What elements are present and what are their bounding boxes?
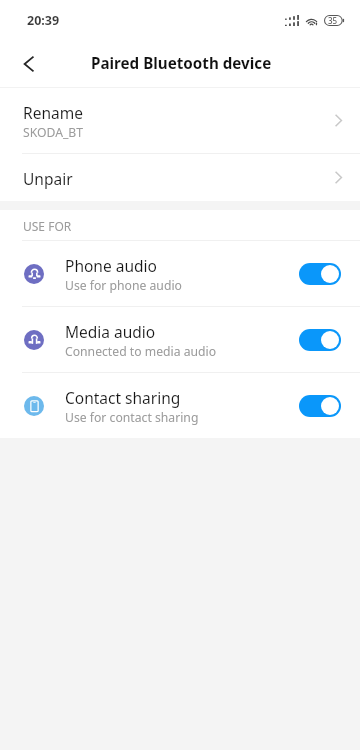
staticText: Connected to media audio — [65, 343, 217, 360]
staticText: 20:39 — [27, 12, 60, 29]
button[interactable]: Contact sharing — [0, 373, 360, 438]
staticText: Unpair — [23, 168, 73, 189]
staticText: USE FOR — [23, 218, 72, 234]
button[interactable]: Toggle on — [299, 395, 341, 417]
staticText: Paired Bluetooth device — [91, 53, 272, 74]
staticText: Use for contact sharing — [65, 409, 199, 426]
button[interactable]: Media audio — [0, 307, 360, 372]
button[interactable]: Rename — [0, 88, 360, 153]
staticText: SKODA_BT — [23, 124, 84, 141]
staticText: Rename — [23, 102, 83, 123]
button[interactable]: Toggle on — [299, 329, 341, 351]
button[interactable]: Unpair — [0, 154, 360, 201]
button[interactable]: Toggle on — [299, 263, 341, 285]
staticText: Phone audio — [65, 255, 157, 276]
staticText: Contact sharing — [65, 387, 181, 408]
button[interactable]: Back — [6, 41, 52, 87]
staticText: Media audio — [65, 321, 156, 342]
button[interactable]: Phone audio — [0, 241, 360, 306]
staticText: 35 — [328, 15, 338, 26]
staticText: Use for phone audio — [65, 277, 182, 294]
